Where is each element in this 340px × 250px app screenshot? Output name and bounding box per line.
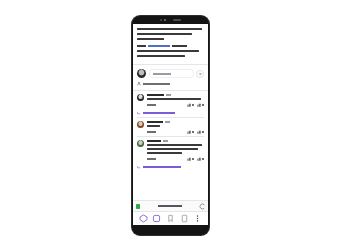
- button[interactable]: Reply: [137, 137, 204, 163]
- button[interactable]: [137, 109, 204, 117]
- button[interactable]: Protection: [138, 213, 149, 224]
- button[interactable]: Reading list: [179, 213, 190, 224]
- button[interactable]: [137, 163, 204, 171]
- button[interactable]: Tabs: [151, 213, 162, 224]
- button[interactable]: Reply: [137, 91, 204, 109]
- button[interactable]: Bookmarks: [165, 213, 176, 224]
- button[interactable]: [149, 69, 194, 78]
- button[interactable]: [133, 81, 208, 87]
- button[interactable]: More options: [192, 213, 203, 224]
- button[interactable]: Send comment: [196, 70, 204, 78]
- button[interactable]: Reload page: [133, 201, 208, 211]
- button[interactable]: Reload page: [200, 204, 205, 209]
- button[interactable]: Reply: [137, 118, 204, 136]
